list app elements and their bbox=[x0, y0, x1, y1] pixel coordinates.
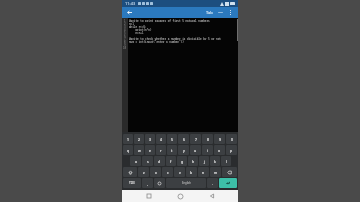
staticText: d bbox=[158, 159, 161, 164]
button[interactable]: t bbox=[167, 145, 177, 155]
staticText: 9 bbox=[219, 137, 221, 142]
button[interactable]: n bbox=[198, 167, 209, 177]
staticText: r bbox=[160, 148, 162, 153]
staticText: print(n*n) bbox=[129, 28, 152, 31]
button[interactable]: g bbox=[177, 156, 187, 166]
button[interactable]: l bbox=[221, 156, 231, 166]
button[interactable]: English bbox=[166, 178, 206, 188]
button[interactable]: Tab bbox=[204, 9, 215, 16]
button[interactable]: . bbox=[207, 178, 218, 188]
staticText: 5 bbox=[171, 137, 173, 142]
staticText: k bbox=[214, 159, 216, 164]
staticText: 6 bbox=[124, 34, 126, 37]
button[interactable]: v bbox=[174, 167, 185, 177]
staticText: p bbox=[230, 148, 233, 153]
staticText: f bbox=[170, 159, 172, 164]
staticText: 11:43 bbox=[125, 1, 136, 6]
button[interactable]: u bbox=[190, 145, 201, 155]
button[interactable]: 4 bbox=[156, 134, 166, 144]
staticText: Tab bbox=[206, 10, 213, 15]
button[interactable]: Shift bbox=[123, 167, 137, 177]
staticText: English bbox=[182, 181, 191, 185]
button[interactable]: Enter bbox=[219, 178, 237, 188]
staticText: i bbox=[207, 148, 208, 153]
button[interactable]: Back bbox=[207, 191, 217, 201]
button[interactable]: , bbox=[142, 178, 153, 188]
button[interactable]: ?123 bbox=[123, 178, 141, 188]
staticText: 8 bbox=[124, 40, 126, 43]
staticText: a bbox=[135, 159, 137, 164]
button[interactable]: s bbox=[142, 156, 153, 166]
staticText: u bbox=[194, 148, 197, 153]
button[interactable]: #write to print squares of first 5 natur… bbox=[128, 18, 236, 132]
button[interactable]: 9 bbox=[214, 134, 225, 144]
button[interactable]: 8 bbox=[202, 134, 213, 144]
button[interactable]: 0 bbox=[226, 134, 237, 144]
staticText: 7 bbox=[195, 137, 197, 142]
staticText: b bbox=[190, 170, 193, 175]
button[interactable]: 7 bbox=[190, 134, 201, 144]
staticText: j bbox=[204, 159, 205, 164]
staticText: y bbox=[183, 148, 185, 153]
staticText: 1 bbox=[127, 137, 129, 142]
staticText: 9 bbox=[124, 43, 126, 46]
button[interactable]: y bbox=[178, 145, 189, 155]
button[interactable]: d bbox=[154, 156, 165, 166]
staticText: m bbox=[214, 170, 218, 175]
button[interactable]: 5 bbox=[167, 134, 177, 144]
staticText: #write to print squares of first 5 natur… bbox=[129, 19, 210, 22]
button[interactable]: 2 bbox=[134, 134, 144, 144]
button[interactable]: More options bbox=[226, 8, 235, 17]
staticText: 4 bbox=[160, 137, 162, 142]
staticText: v bbox=[179, 170, 181, 175]
button[interactable]: p bbox=[226, 145, 237, 155]
button[interactable]: 3 bbox=[145, 134, 155, 144]
button[interactable]: 1 bbox=[123, 134, 133, 144]
staticText: t bbox=[171, 148, 173, 153]
staticText: 10 bbox=[123, 46, 127, 49]
button[interactable]: w bbox=[134, 145, 144, 155]
staticText: w bbox=[138, 148, 141, 153]
staticText: , bbox=[147, 181, 148, 186]
button[interactable]: x bbox=[150, 167, 161, 177]
staticText: n bbox=[202, 170, 205, 175]
button[interactable]: 6 bbox=[178, 134, 189, 144]
staticText: n=n+1 bbox=[129, 31, 144, 34]
button[interactable]: b bbox=[186, 167, 197, 177]
button[interactable]: q bbox=[123, 145, 133, 155]
button[interactable]: Home bbox=[175, 191, 185, 201]
staticText: 2 bbox=[138, 137, 140, 142]
staticText: o bbox=[218, 148, 221, 153]
staticText: while n<=5: bbox=[129, 25, 147, 28]
staticText: 3 bbox=[149, 137, 151, 142]
staticText: num = int(input("enter a number")) bbox=[129, 40, 184, 43]
button[interactable]: Back bbox=[125, 8, 134, 17]
button[interactable]: c bbox=[162, 167, 173, 177]
button[interactable]: z bbox=[138, 167, 149, 177]
button[interactable]: i bbox=[202, 145, 213, 155]
staticText: 0 bbox=[231, 137, 233, 142]
button[interactable]: r bbox=[156, 145, 166, 155]
button[interactable]: a bbox=[130, 156, 141, 166]
button[interactable]: o bbox=[214, 145, 225, 155]
staticText: 5 bbox=[124, 31, 126, 34]
button[interactable]: j bbox=[199, 156, 209, 166]
staticText: . bbox=[212, 181, 213, 186]
staticText: x bbox=[155, 170, 157, 175]
staticText: l bbox=[226, 159, 227, 164]
button[interactable]: e bbox=[145, 145, 155, 155]
button[interactable]: Backspace bbox=[222, 167, 237, 177]
button[interactable]: k bbox=[210, 156, 220, 166]
staticText: 1 bbox=[124, 19, 126, 22]
staticText: ?123 bbox=[129, 181, 135, 185]
staticText: 4 bbox=[124, 28, 126, 31]
staticText: e bbox=[149, 148, 151, 153]
staticText: g bbox=[181, 159, 184, 164]
button[interactable]: Recents bbox=[144, 191, 154, 201]
button[interactable]: f bbox=[166, 156, 176, 166]
button[interactable]: Emoji bbox=[154, 178, 165, 188]
staticText: n=1 bbox=[129, 22, 134, 25]
button[interactable]: m bbox=[210, 167, 221, 177]
button[interactable]: h bbox=[188, 156, 198, 166]
